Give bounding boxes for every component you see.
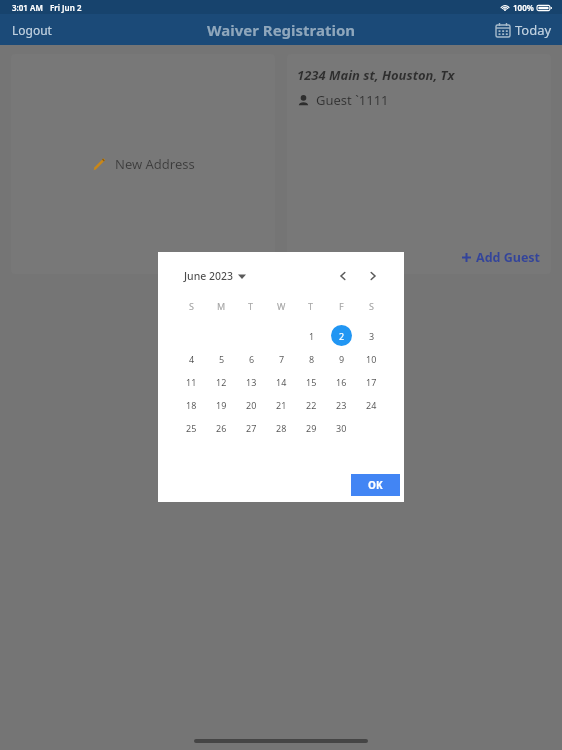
button[interactable]: 19 <box>211 394 232 415</box>
staticText: T <box>308 300 314 312</box>
button[interactable]: Next month <box>362 265 384 287</box>
staticText: 25 <box>186 422 197 434</box>
button[interactable]: 12 <box>211 371 232 392</box>
button[interactable]: 18 <box>181 394 202 415</box>
staticText: OK <box>368 478 383 492</box>
staticText: 22 <box>306 399 317 411</box>
staticText: 21 <box>276 399 287 411</box>
staticText: 2 <box>339 330 345 342</box>
staticText: 7 <box>279 353 285 365</box>
button[interactable]: Today <box>486 17 562 43</box>
button[interactable]: 20 <box>241 394 262 415</box>
button[interactable]: 15 <box>301 371 322 392</box>
staticText: 1234 Main st, Houston, Tx <box>297 66 455 84</box>
staticText: Guest `1111 <box>316 91 389 109</box>
button[interactable]: Previous month <box>332 265 354 287</box>
staticText: 9 <box>339 353 345 365</box>
button[interactable]: 1 <box>301 325 322 346</box>
button[interactable]: 27 <box>241 417 262 438</box>
button[interactable]: 3 <box>361 325 382 346</box>
button[interactable]: 10 <box>361 348 382 369</box>
button[interactable]: Guest `1111 <box>297 91 389 109</box>
staticText: 11 <box>186 376 197 388</box>
staticText: 15 <box>306 376 317 388</box>
staticText: Add Guest <box>476 249 541 266</box>
staticText: New Address <box>115 155 195 173</box>
staticText: T <box>248 300 254 312</box>
button[interactable]: 22 <box>301 394 322 415</box>
staticText: Fri Jun 2 <box>50 2 82 13</box>
staticText: June 2023 <box>184 269 233 283</box>
staticText: 6 <box>249 353 255 365</box>
staticText: 24 <box>366 399 377 411</box>
staticText: 26 <box>216 422 227 434</box>
button[interactable]: New Address <box>11 54 275 274</box>
staticText: 3:01 AM <box>12 2 43 13</box>
button[interactable]: 6 <box>241 348 262 369</box>
button[interactable]: 11 <box>181 371 202 392</box>
staticText: Today <box>515 21 552 39</box>
staticText: 23 <box>336 399 347 411</box>
button[interactable]: 24 <box>361 394 382 415</box>
staticText: 27 <box>246 422 257 434</box>
button[interactable]: OK <box>351 474 400 496</box>
staticText: Waiver Registration <box>207 20 356 40</box>
button[interactable]: 13 <box>241 371 262 392</box>
button[interactable]: Logout <box>0 17 64 43</box>
staticText: F <box>339 300 344 312</box>
staticText: 100% <box>513 2 534 13</box>
staticText: 8 <box>309 353 315 365</box>
staticText: 16 <box>336 376 347 388</box>
button[interactable]: 7 <box>271 348 292 369</box>
staticText: 28 <box>276 422 287 434</box>
staticText: M <box>217 300 226 312</box>
button[interactable]: 5 <box>211 348 232 369</box>
button[interactable]: 21 <box>271 394 292 415</box>
staticText: 17 <box>366 376 377 388</box>
staticText: Logout <box>12 22 52 38</box>
button[interactable]: 25 <box>181 417 202 438</box>
staticText: 19 <box>216 399 227 411</box>
button[interactable]: 23 <box>331 394 352 415</box>
button[interactable]: Add Guest <box>461 249 551 274</box>
button[interactable]: 26 <box>211 417 232 438</box>
staticText: 5 <box>219 353 225 365</box>
button[interactable]: 8 <box>301 348 322 369</box>
button[interactable]: 4 <box>181 348 202 369</box>
button[interactable]: 17 <box>361 371 382 392</box>
staticText: 12 <box>216 376 227 388</box>
staticText: 18 <box>186 399 197 411</box>
button[interactable]: 2 <box>331 325 352 346</box>
staticText: S <box>369 300 374 312</box>
staticText: W <box>277 300 286 312</box>
staticText: 4 <box>189 353 195 365</box>
staticText: 1 <box>309 330 315 342</box>
staticText: S <box>189 300 194 312</box>
staticText: 3 <box>369 330 375 342</box>
button[interactable]: 16 <box>331 371 352 392</box>
staticText: 10 <box>366 353 377 365</box>
button[interactable]: 28 <box>271 417 292 438</box>
button[interactable]: 29 <box>301 417 322 438</box>
button[interactable]: 9 <box>331 348 352 369</box>
button[interactable]: 30 <box>331 417 352 438</box>
staticText: 20 <box>246 399 257 411</box>
button[interactable]: June 2023 <box>184 269 246 283</box>
button[interactable]: 14 <box>271 371 292 392</box>
staticText: 13 <box>246 376 257 388</box>
staticText: 14 <box>276 376 287 388</box>
staticText: 29 <box>306 422 317 434</box>
staticText: 30 <box>336 422 347 434</box>
